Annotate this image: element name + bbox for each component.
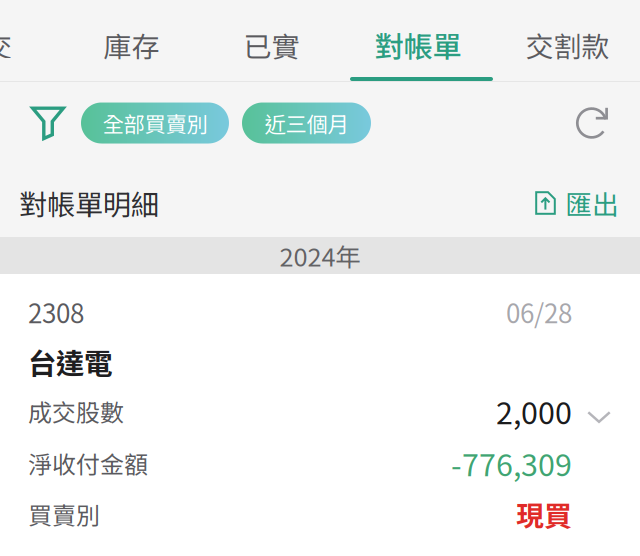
staticText: 2308: [28, 293, 84, 331]
staticText: 對帳單: [374, 24, 461, 66]
button[interactable]: Refresh: [576, 107, 608, 139]
staticText: 已實: [243, 25, 299, 65]
button[interactable]: Filter: [31, 106, 65, 139]
staticText: 近三個月: [264, 108, 348, 138]
staticText: 台達電: [28, 341, 112, 382]
button[interactable]: 對帳單: [344, 0, 492, 81]
button[interactable]: 近三個月: [242, 102, 371, 143]
button[interactable]: 庫存: [64, 0, 199, 81]
staticText: 成交股數: [28, 394, 124, 428]
button[interactable]: 交: [0, 0, 64, 81]
staticText: -776,309: [451, 441, 572, 485]
staticText: 2,000: [496, 389, 572, 433]
staticText: 庫存: [103, 25, 159, 65]
button[interactable]: 匯出: [535, 186, 640, 218]
button[interactable]: 已實: [199, 0, 344, 81]
staticText: 交: [0, 25, 12, 65]
staticText: 全部買賣別: [102, 108, 207, 138]
staticText: 現買: [516, 494, 572, 534]
staticText: 淨收付金額: [28, 446, 148, 480]
staticText: 交割款: [525, 25, 609, 65]
staticText: 買賣別: [28, 497, 100, 531]
button[interactable]: 全部買賣別: [81, 102, 229, 143]
staticText: 匯出: [565, 184, 619, 222]
button[interactable]: Expand: [572, 396, 611, 426]
staticText: 對帳單明細: [19, 182, 159, 223]
button[interactable]: 交割款: [492, 0, 640, 81]
staticText: 2024年: [279, 237, 360, 274]
staticText: 06/28: [506, 293, 572, 331]
